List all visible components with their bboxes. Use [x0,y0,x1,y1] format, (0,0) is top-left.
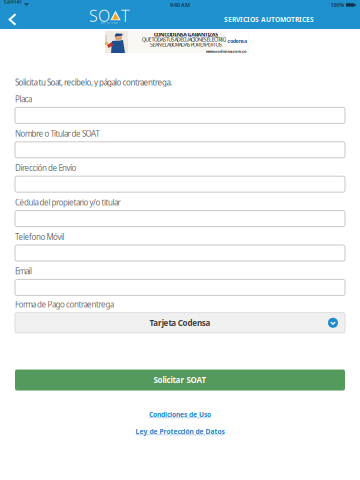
staticText: Dirección de Envío [15,163,76,173]
staticText: Cédula del propietario y/o titular [15,197,120,208]
staticText: Placa [15,94,32,104]
staticText: QUE TODAS TUS ADECUACIONES ELÉCTRICAS [142,36,230,43]
staticText: T [121,5,129,26]
staticText: SERVICIOS AUTOMOTRICES [224,15,314,24]
staticText: 9:40 AM [170,1,190,9]
staticText: Solicita tu Soat, recibelo, y págalo con… [15,77,172,88]
staticText: Tarjeta Codensa [149,317,211,328]
button[interactable]: Tarjeta Codensa [15,313,345,333]
button[interactable]: Condiciones de Uso [15,409,345,420]
staticText: Telefono Móvil [15,231,64,242]
button[interactable]: Solicitar SOAT [15,369,345,390]
staticText: www.codensa.com.co [206,49,247,54]
staticText: Condiciones de Uso [149,410,211,419]
staticText: SEAN ELABORADAS POR EXPERTOS [150,41,222,48]
staticText: Carrier [4,0,21,12]
staticText: SO [89,5,110,26]
staticText: Ley de Protección de Datos [135,427,224,436]
button[interactable]: Ley de Protección de Datos [15,426,345,437]
staticText: Nombre o Titular de SOAT [15,128,99,139]
staticText: SOAT EN LINEA [100,21,118,24]
staticText: Solicitar SOAT [153,375,206,385]
staticText: Email [15,266,32,276]
staticText: CON CODENSA GARANTIZAS [154,31,218,38]
staticText: codensa [227,37,247,45]
staticText: 100% [330,1,344,9]
button[interactable]: Back [0,10,27,29]
staticText: Forma de Pago contraentrega [15,299,114,310]
